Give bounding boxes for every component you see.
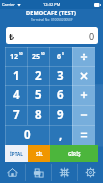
button[interactable]: Home (0, 162, 25, 183)
button[interactable] (72, 85, 95, 105)
staticText: 8 (35, 107, 42, 123)
staticText: 12:32 PM (43, 2, 61, 7)
button[interactable]: Products (51, 162, 77, 183)
button[interactable]: 0 (5, 125, 49, 145)
staticText: SİL (36, 151, 43, 157)
staticText: 0 (89, 30, 95, 42)
staticText: 6 (57, 87, 64, 103)
staticText: 2 (35, 68, 42, 84)
staticText: , (59, 127, 63, 143)
button[interactable]: 25 (27, 47, 49, 66)
button[interactable] (72, 47, 95, 66)
button[interactable]: 5 (27, 85, 49, 105)
staticText: 3 (57, 68, 64, 84)
staticText: 0 (24, 127, 31, 143)
staticText: 12 (10, 52, 19, 62)
button[interactable]: , (49, 125, 72, 145)
button[interactable]: 9 (49, 105, 72, 125)
staticText: 50 (19, 52, 23, 56)
staticText: 7 (13, 107, 20, 123)
button[interactable] (72, 125, 95, 145)
staticText: 6 (57, 52, 62, 62)
button[interactable] (72, 105, 95, 125)
staticText: Terminal No: 0100502005EF (31, 18, 73, 22)
button[interactable]: 12 (5, 47, 27, 66)
staticText: 50 (41, 52, 45, 56)
button[interactable]: 4 (5, 85, 27, 105)
staticText: GİRİŞ (68, 151, 81, 157)
staticText: 5 (35, 87, 42, 103)
button[interactable]: 2 (27, 66, 49, 85)
button[interactable] (72, 66, 95, 85)
staticText: ₺ (9, 30, 15, 42)
staticText: 9 (57, 107, 64, 123)
staticText: İPTAL (10, 151, 23, 157)
button[interactable]: Receipts (25, 162, 51, 183)
button[interactable]: GİRİŞ (50, 145, 98, 162)
staticText: DEMOCAFE (TEST) (26, 9, 77, 17)
button[interactable]: 7 (5, 105, 27, 125)
button[interactable]: SİL (28, 145, 50, 162)
staticText: 25 (32, 52, 41, 62)
button[interactable]: 8 (27, 105, 49, 125)
staticText: 1 (13, 68, 20, 84)
button[interactable]: 1 (5, 66, 27, 85)
button[interactable]: İPTAL (5, 145, 28, 162)
staticText: 4 (13, 87, 20, 103)
button[interactable]: 3 (49, 66, 72, 85)
button[interactable]: 6 (49, 47, 72, 66)
button[interactable]: Settings (77, 162, 103, 183)
button[interactable]: 6 (49, 85, 72, 105)
button[interactable]: ₺ (6, 27, 98, 44)
staticText: Carrier (2, 2, 16, 7)
staticText: 0 (62, 52, 64, 56)
